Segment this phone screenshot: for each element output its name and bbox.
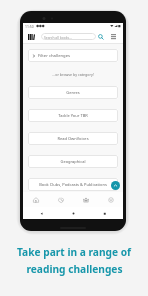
button[interactable]: Read OwnVoices	[28, 132, 118, 145]
staticText: Search all books...	[44, 35, 72, 39]
button[interactable]: Genres	[28, 86, 118, 99]
button[interactable]: Book Clubs, Podcasts & Publications	[28, 178, 118, 191]
button[interactable]: Home	[23, 192, 48, 207]
staticText: reading challenges	[26, 262, 123, 276]
button[interactable]: Search	[96, 32, 105, 41]
button[interactable]: Geographical	[28, 155, 118, 168]
button[interactable]: Search all books...	[41, 33, 96, 40]
button[interactable]: Community	[73, 192, 98, 207]
staticText: Tackle Your TBR	[58, 113, 88, 118]
staticText: ...or browse by category!	[28, 72, 118, 77]
staticText: Geographical	[60, 159, 86, 164]
staticText: Read OwnVoices	[57, 136, 89, 141]
button[interactable]: Library	[28, 34, 35, 40]
button[interactable]: Profile	[98, 192, 123, 207]
staticText: Filter challenges	[38, 53, 71, 59]
button[interactable]: Scroll to top	[111, 181, 120, 190]
staticText: Genres	[66, 90, 80, 95]
staticText: Book Clubs, Podcasts & Publications	[39, 182, 107, 187]
button[interactable]: Menu	[109, 32, 118, 41]
button[interactable]: Reading progress	[48, 192, 73, 207]
button[interactable]: Filter challenges	[28, 49, 118, 62]
button[interactable]: Tackle Your TBR	[28, 109, 118, 122]
staticText: Take part in a range of	[17, 245, 131, 259]
staticText: 11:50	[25, 24, 34, 29]
